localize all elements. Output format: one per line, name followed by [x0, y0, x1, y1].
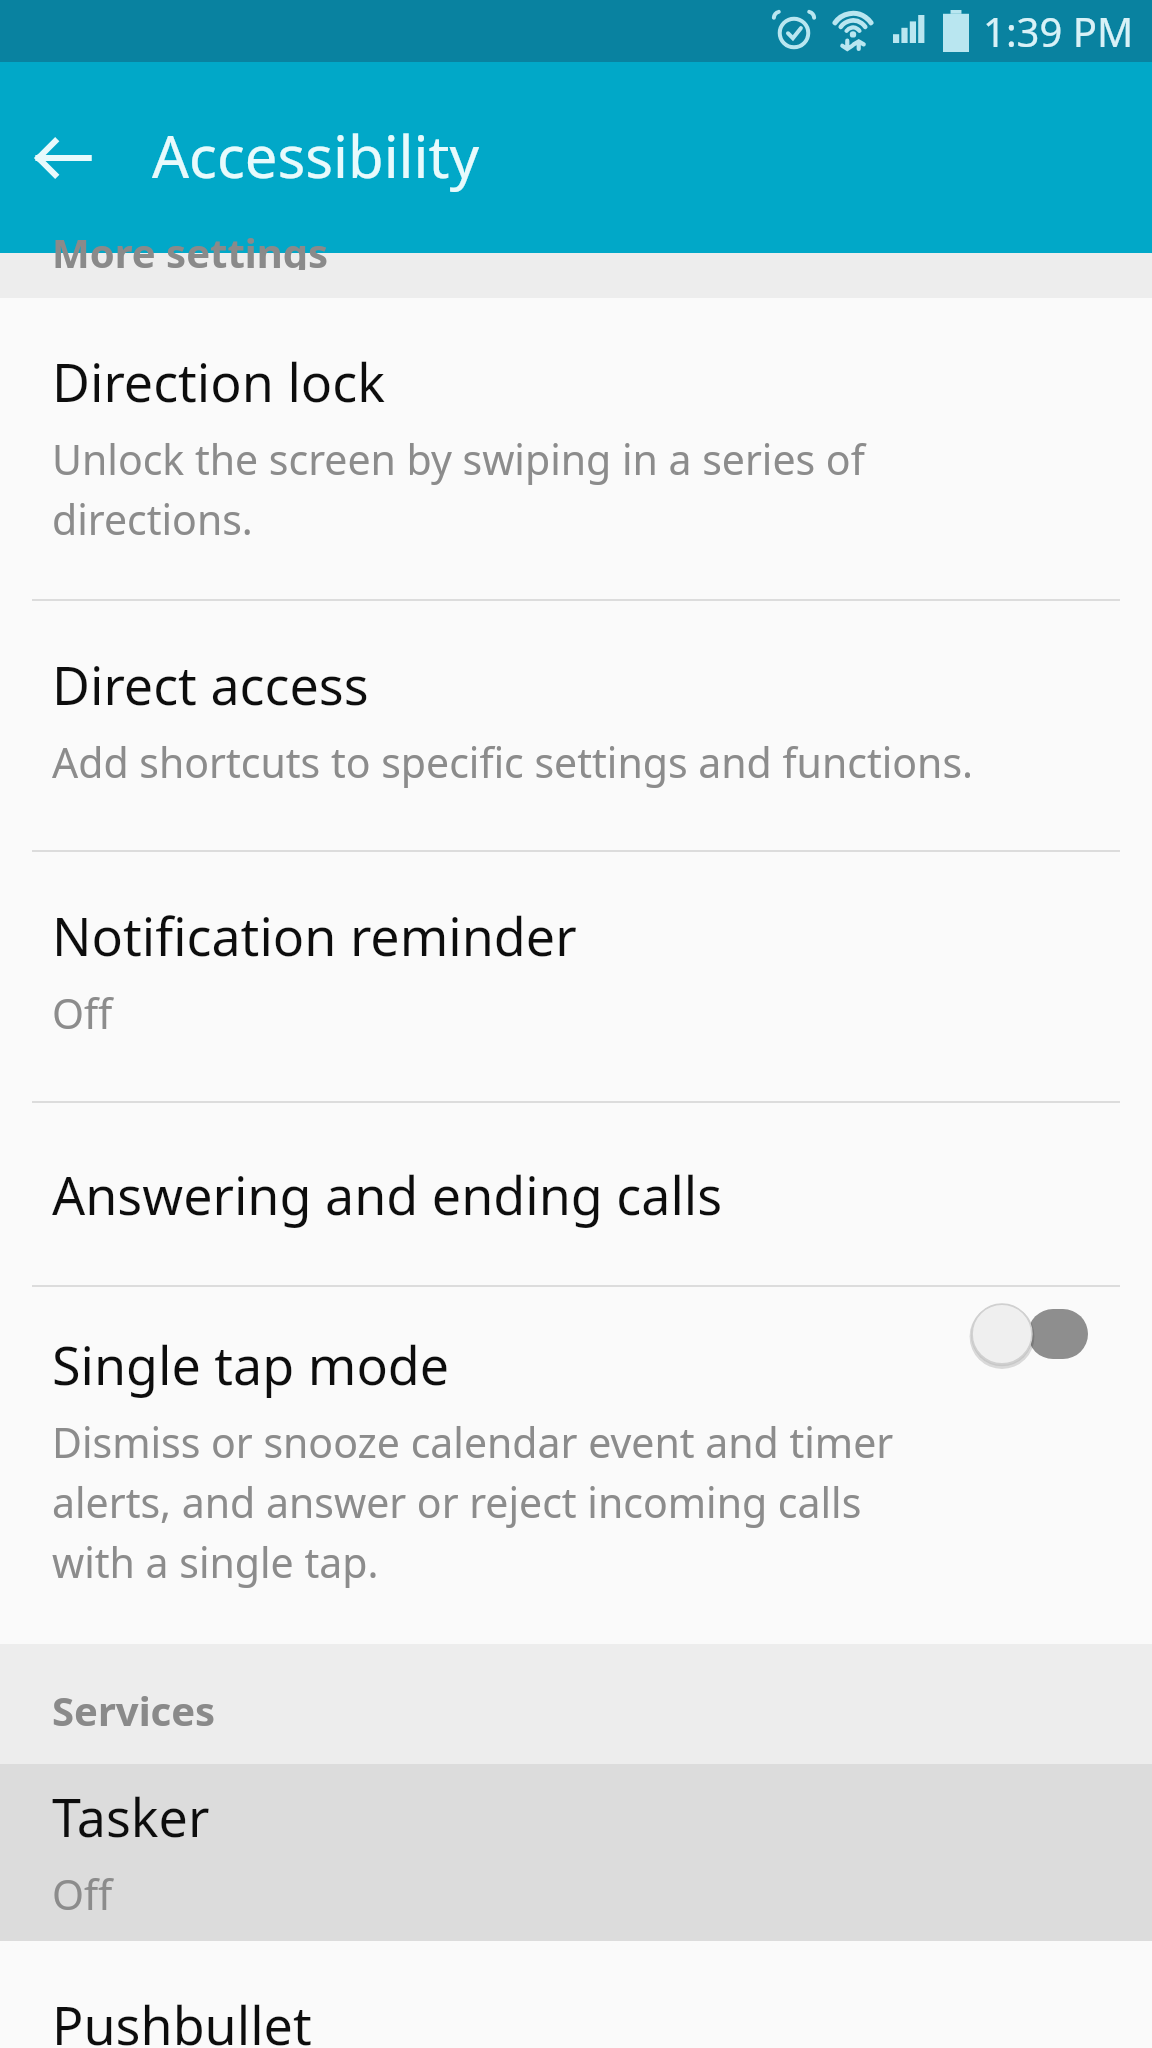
- staticText: Notification reminder: [52, 900, 577, 971]
- staticText: 1:39 PM: [983, 4, 1134, 58]
- button[interactable]: Answering and ending calls: [0, 1103, 1152, 1285]
- staticText: More settings: [52, 225, 329, 270]
- button[interactable]: Direction lock: [0, 298, 1152, 599]
- staticText: Unlock the screen by swiping in a series…: [52, 431, 865, 487]
- staticText: Single tap mode: [52, 1329, 450, 1400]
- button[interactable]: Tasker: [0, 1764, 1152, 1939]
- staticText: Off: [52, 985, 113, 1041]
- staticText: Direct access: [52, 649, 369, 720]
- staticText: with a single tap.: [52, 1534, 379, 1590]
- staticText: Off: [52, 1866, 113, 1922]
- staticText: Services: [52, 1683, 216, 1737]
- staticText: Add shortcuts to specific settings and f…: [52, 734, 974, 790]
- button[interactable]: Notification reminder: [0, 852, 1152, 1101]
- staticText: Answering and ending calls: [52, 1159, 723, 1230]
- button[interactable]: Pushbullet: [0, 1941, 1152, 2048]
- staticText: directions.: [52, 491, 253, 547]
- staticText: Pushbullet: [52, 1989, 312, 2048]
- staticText: Dismiss or snooze calendar event and tim…: [52, 1414, 894, 1470]
- button[interactable]: Direct access: [0, 601, 1152, 850]
- button[interactable]: Single tap mode: [0, 1287, 1152, 1644]
- staticText: Tasker: [52, 1781, 210, 1852]
- staticText: Direction lock: [52, 346, 386, 417]
- button[interactable]: Navigate up: [20, 115, 106, 201]
- staticText: Accessibility: [152, 116, 480, 195]
- button[interactable]: Single tap mode toggle, off: [966, 1288, 1094, 1380]
- staticText: alerts, and answer or reject incoming ca…: [52, 1474, 862, 1530]
